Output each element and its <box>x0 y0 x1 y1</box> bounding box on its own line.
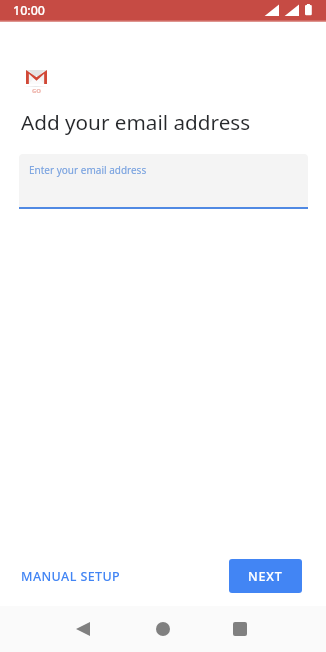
staticText: NEXT <box>248 568 283 585</box>
button[interactable]: Home <box>139 613 187 645</box>
button[interactable]: Back <box>59 613 107 645</box>
staticText: Add your email address <box>21 108 251 136</box>
staticText: GO <box>32 87 42 95</box>
staticText: Enter your email address <box>29 163 147 177</box>
button[interactable]: MANUAL SETUP <box>15 563 127 590</box>
button[interactable]: Recent apps <box>216 613 264 645</box>
button[interactable]: Enter your email address <box>19 154 308 209</box>
button[interactable]: NEXT <box>229 559 302 593</box>
staticText: 10:00 <box>13 2 46 19</box>
staticText: MANUAL SETUP <box>21 568 121 585</box>
